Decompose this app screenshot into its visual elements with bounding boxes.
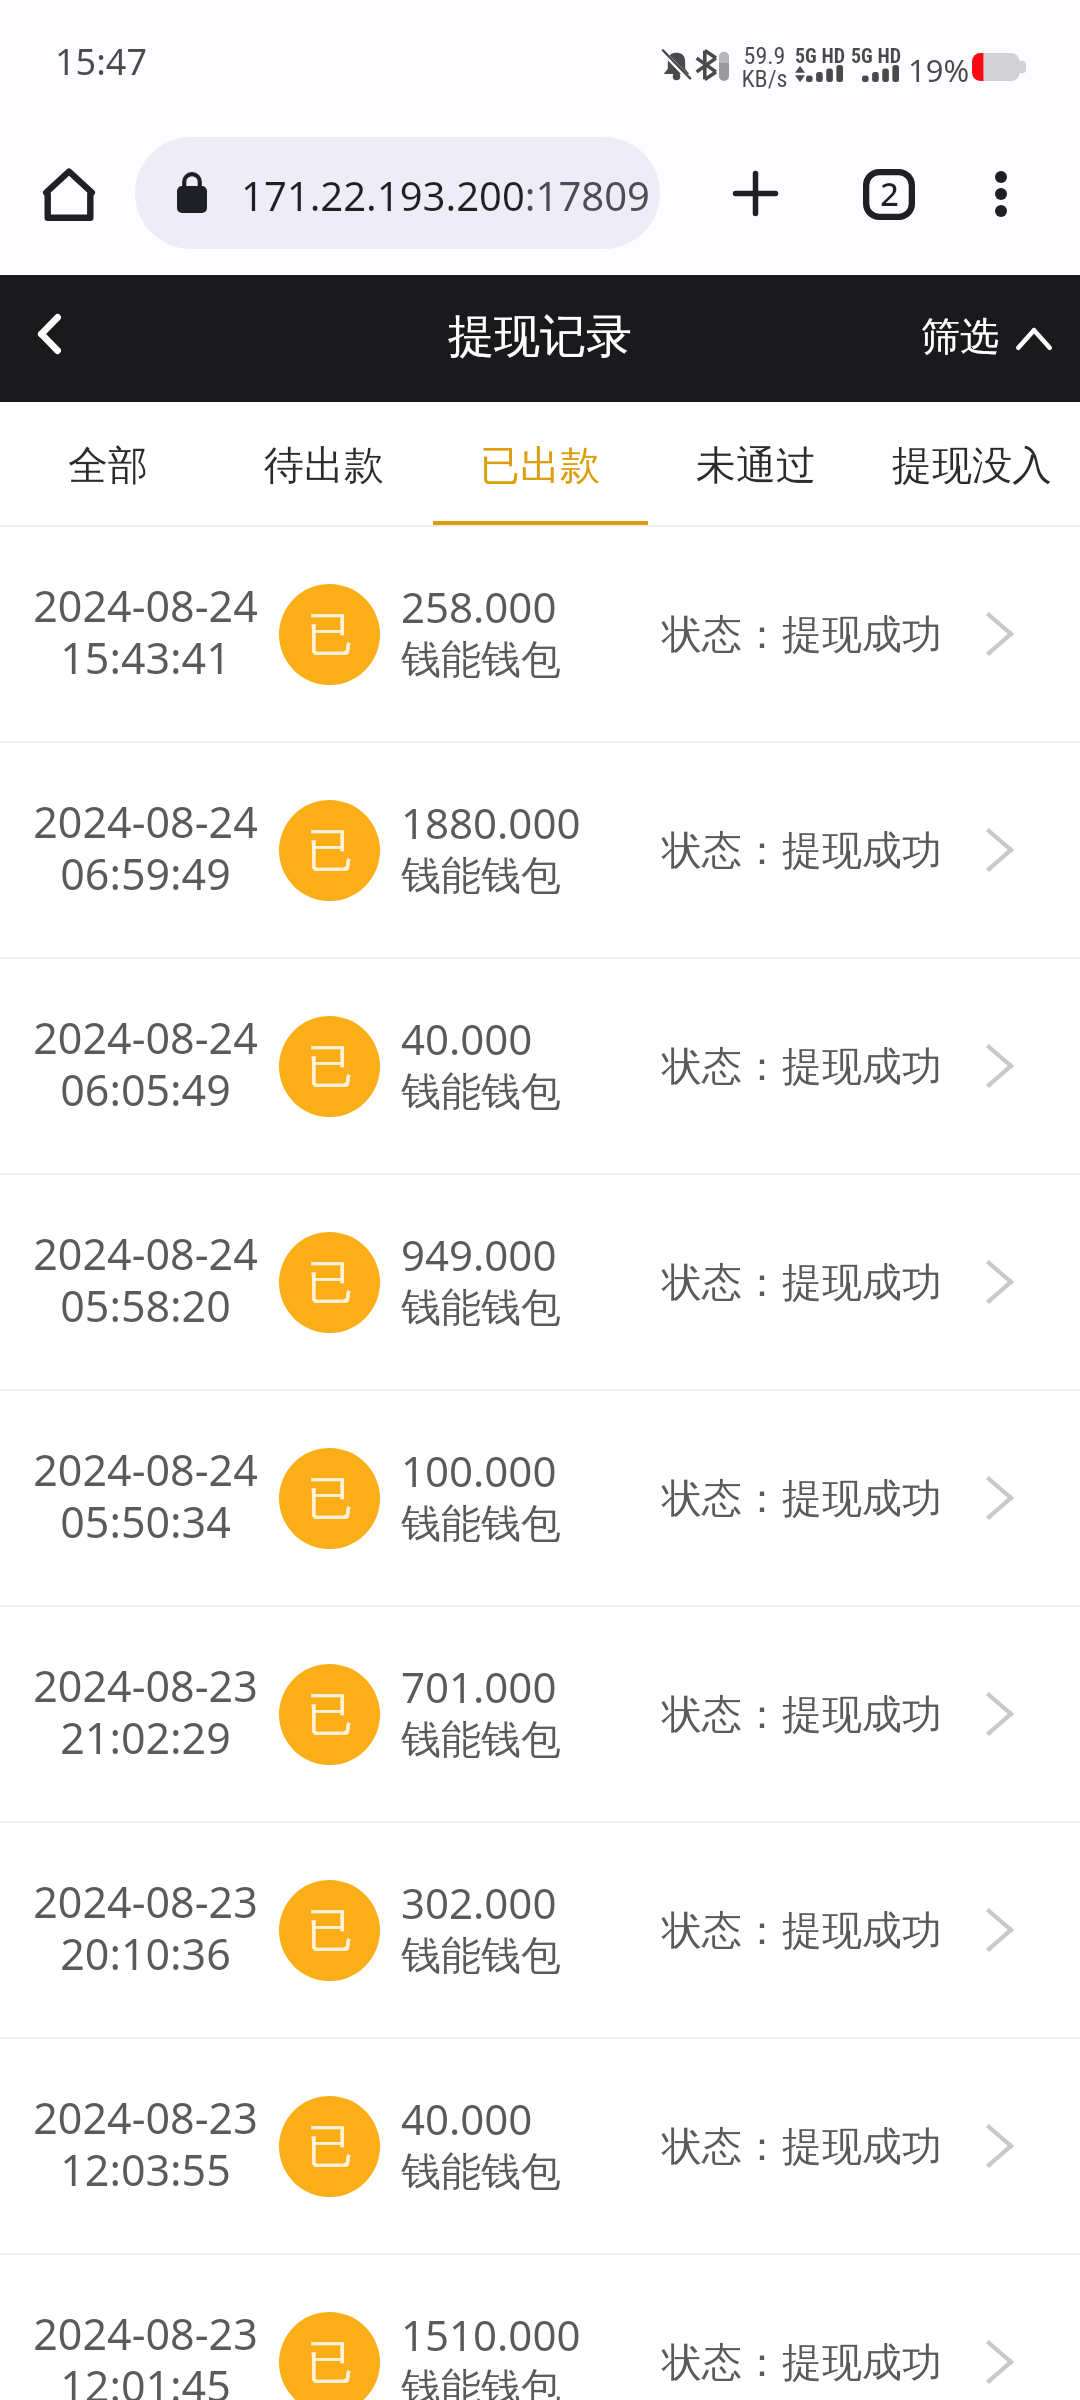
staticText: 19% [908,49,970,91]
staticText: 状态：提现成功 [662,1905,942,1955]
staticText: 已 [307,1038,353,1096]
staticText: 949.000 钱能钱包 [401,1226,561,1333]
button[interactable]: 全部 [0,402,216,527]
staticText: 已 [307,822,353,880]
staticText: 2024-08-24 15:43:41 [33,576,258,686]
staticText: 302.000 钱能钱包 [401,1874,561,1981]
staticText: 未通过 [696,440,816,490]
staticText: 701.000 钱能钱包 [401,1658,561,1765]
staticText: 已出款 [480,440,600,490]
staticText: 171.22.193.200:17809 [241,168,650,222]
button[interactable]: 未通过 [648,402,864,527]
staticText: 2024-08-24 06:05:49 [33,1008,258,1118]
staticText: 2024-08-24 05:58:20 [33,1224,258,1334]
staticText: 提现没入 [892,440,1052,490]
staticText: 筛选 [921,312,999,361]
button[interactable]: 171.22.193.200:17809 [135,137,660,249]
staticText: 已 [307,1686,353,1744]
button[interactable]: Tabs, 2 open [843,148,935,240]
button[interactable]: More options [961,154,1041,234]
button[interactable]: 2024-08-23 12:01:45 [0,2255,1080,2400]
staticText: 待出款 [264,440,384,490]
staticText: 2024-08-24 05:50:34 [33,1440,258,1550]
staticText: 已 [307,1254,353,1312]
button[interactable]: 2024-08-24 06:05:49 [0,959,1080,1175]
button[interactable]: 筛选 [921,312,1052,361]
button[interactable]: New tab [705,143,805,243]
staticText: 59.9 KB/s [741,42,788,93]
staticText: 15:47 [55,37,148,86]
staticText: 已 [307,1470,353,1528]
staticText: 5G HD [851,44,901,67]
staticText: 1510.000 钱能钱包 [401,2306,581,2400]
staticText: 40.000 钱能钱包 [401,2090,561,2197]
button[interactable]: 2024-08-23 21:02:29 [0,1607,1080,1823]
staticText: 2024-08-24 06:59:49 [33,792,258,902]
button[interactable]: 已出款 [432,402,648,527]
staticText: 2024-08-23 12:01:45 [33,2304,258,2400]
staticText: 2024-08-23 20:10:36 [33,1872,258,1982]
button[interactable]: 2024-08-24 05:58:20 [0,1175,1080,1391]
staticText: 2 [880,171,899,216]
staticText: 5G HD [795,44,845,67]
staticText: 提现记录 [448,308,632,366]
button[interactable]: Back [7,292,91,376]
staticText: 全部 [68,440,148,490]
staticText: 100.000 钱能钱包 [401,1442,561,1549]
staticText: 2024-08-23 21:02:29 [33,1656,258,1766]
staticText: 状态：提现成功 [662,2337,942,2387]
staticText: 状态：提现成功 [662,1041,942,1091]
staticText: 状态：提现成功 [662,609,942,659]
button[interactable]: 2024-08-23 20:10:36 [0,1823,1080,2039]
button[interactable]: 2024-08-24 06:59:49 [0,743,1080,959]
staticText: 已 [307,2118,353,2176]
staticText: 状态：提现成功 [662,1473,942,1523]
button[interactable]: 2024-08-23 12:03:55 [0,2039,1080,2255]
button[interactable]: 提现没入 [864,402,1080,527]
staticText: 状态：提现成功 [662,825,942,875]
button[interactable]: Home [23,148,115,240]
button[interactable]: 2024-08-24 15:43:41 [0,527,1080,743]
staticText: 状态：提现成功 [662,2121,942,2171]
staticText: 已 [307,2334,353,2392]
staticText: 状态：提现成功 [662,1689,942,1739]
staticText: 258.000 钱能钱包 [401,578,561,685]
staticText: 2024-08-23 12:03:55 [33,2088,258,2198]
button[interactable]: 待出款 [216,402,432,527]
button[interactable]: 2024-08-24 05:50:34 [0,1391,1080,1607]
staticText: 已 [307,606,353,664]
staticText: 40.000 钱能钱包 [401,1010,561,1117]
staticText: 状态：提现成功 [662,1257,942,1307]
staticText: 1880.000 钱能钱包 [401,794,581,901]
staticText: 已 [307,1902,353,1960]
